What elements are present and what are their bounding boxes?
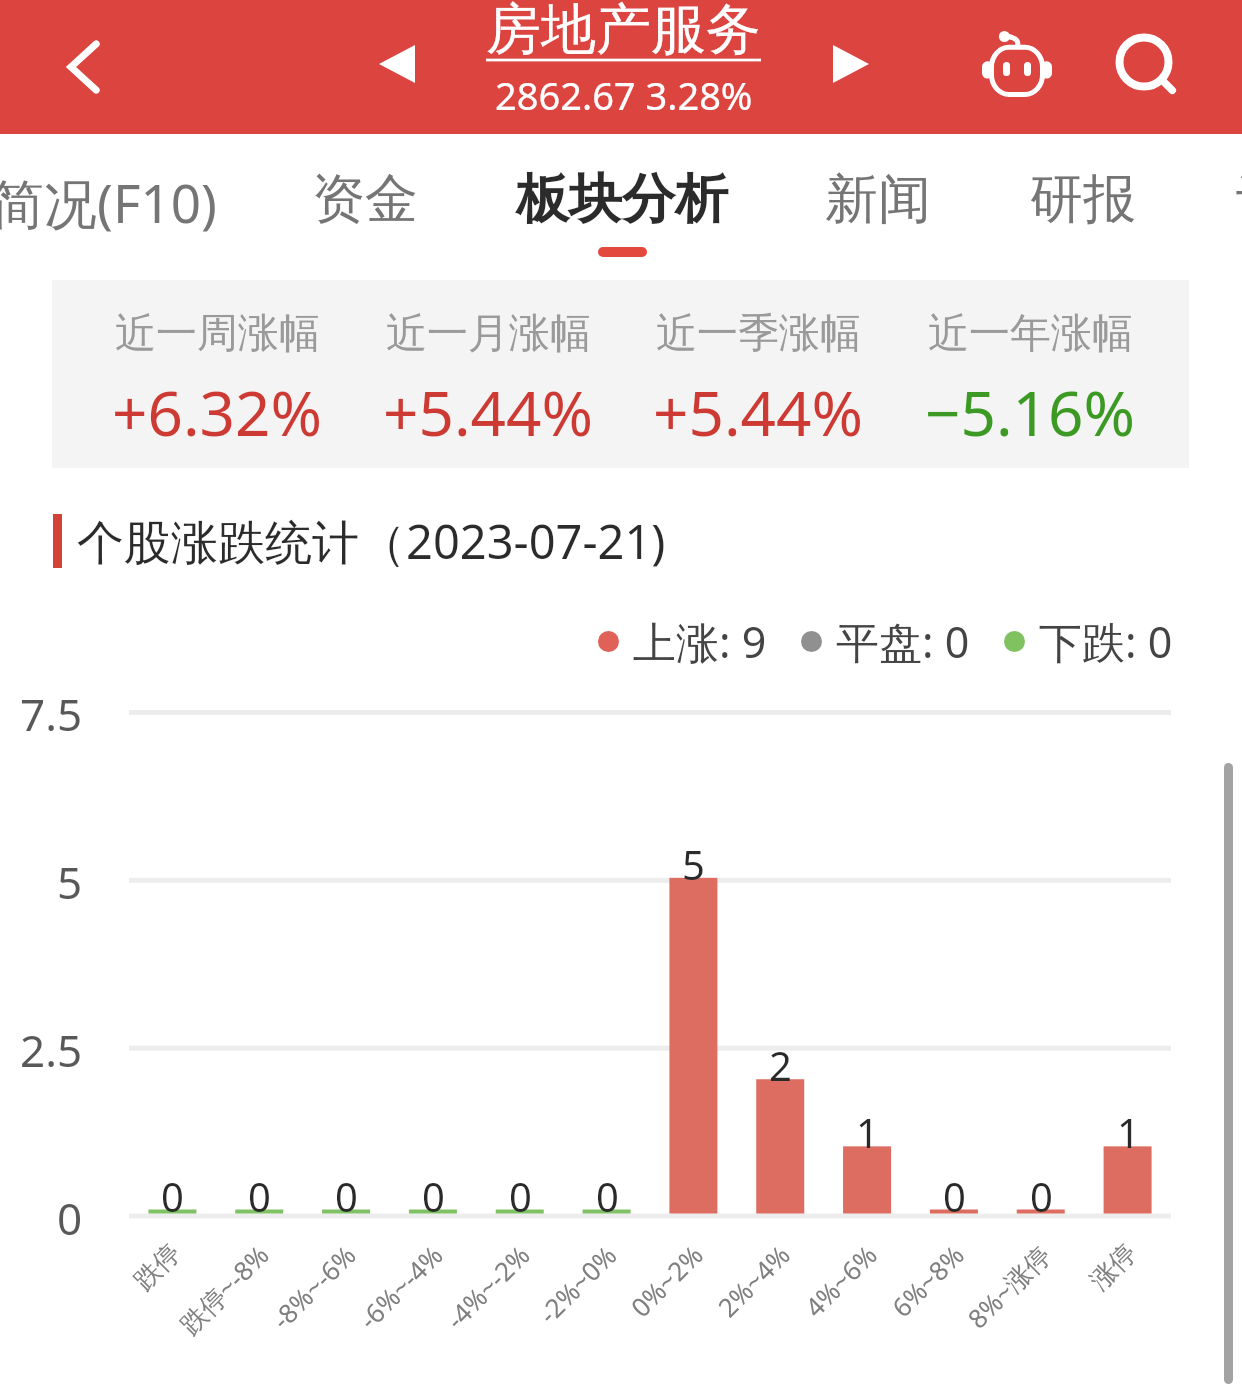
staticText: 0	[422, 1169, 445, 1223]
staticText: 2	[769, 1038, 792, 1092]
staticText: 0	[161, 1169, 184, 1223]
staticText: 简况(F10)	[0, 166, 217, 238]
staticText: 2.5	[20, 1020, 83, 1080]
staticText: 4%~6%	[797, 1237, 884, 1324]
staticText: -6%~-4%	[351, 1237, 450, 1336]
button[interactable]: AI assistant	[962, 0, 1072, 134]
staticText: 7.5	[20, 684, 83, 744]
staticText: 0	[57, 1188, 83, 1248]
staticText: 近一月涨幅	[386, 308, 591, 360]
staticText: 0	[1030, 1169, 1053, 1223]
staticText: -8%~-6%	[264, 1237, 363, 1336]
staticText: 跌停	[127, 1237, 187, 1297]
button[interactable]: 板块分析	[516, 134, 728, 274]
staticText: 板块分析	[516, 166, 728, 233]
staticText: 0	[943, 1169, 966, 1223]
button[interactable]: 资金	[312, 134, 418, 274]
staticText: 房地产服务	[486, 0, 761, 64]
staticText: 讨论	[1236, 166, 1242, 233]
staticText: 6%~8%	[884, 1237, 971, 1324]
staticText: 5	[57, 852, 83, 912]
staticText: 0%~2%	[623, 1237, 710, 1324]
button[interactable]: 近一年涨幅	[880, 280, 1180, 468]
button[interactable]: Next sector	[805, 0, 901, 134]
staticText: 个股涨跌统计（2023-07-21)	[77, 509, 666, 573]
staticText: 0	[596, 1169, 619, 1223]
staticText: 0	[509, 1169, 532, 1223]
button[interactable]: Previous sector	[349, 0, 445, 134]
button[interactable]: 近一月涨幅	[338, 280, 638, 468]
button[interactable]: 房地产服务	[486, 0, 761, 121]
button[interactable]: 讨论	[1236, 134, 1242, 274]
staticText: 近一年涨幅	[928, 308, 1133, 360]
staticText: 2862.67 3.28%	[495, 69, 753, 121]
staticText: 0	[335, 1169, 358, 1223]
staticText: 下跌: 0	[1039, 612, 1173, 671]
staticText: 近一周涨幅	[115, 308, 320, 360]
staticText: 1	[856, 1105, 879, 1159]
staticText: 1	[1117, 1105, 1140, 1159]
button[interactable]: 下跌: 0	[1004, 612, 1173, 671]
staticText: 2%~4%	[710, 1237, 797, 1324]
staticText: 涨停	[1083, 1237, 1143, 1297]
staticText: +6.32%	[112, 370, 322, 454]
staticText: 8%~涨停	[959, 1237, 1058, 1336]
button[interactable]: 上涨: 9	[598, 612, 767, 671]
staticText: 5	[682, 837, 705, 891]
button[interactable]: Back	[30, 0, 140, 134]
staticText: -4%~-2%	[438, 1237, 537, 1336]
button[interactable]: 近一季涨幅	[608, 280, 908, 468]
button[interactable]: 研报	[1030, 134, 1136, 274]
button[interactable]: 平盘: 0	[801, 612, 970, 671]
staticText: -2%~0%	[530, 1237, 624, 1330]
button[interactable]: 近一周涨幅	[67, 280, 367, 468]
staticText: 近一季涨幅	[656, 308, 861, 360]
staticText: 0	[248, 1169, 271, 1223]
button[interactable]: 简况(F10)	[0, 134, 217, 274]
staticText: 新闻	[825, 166, 931, 233]
staticText: 平盘: 0	[836, 612, 970, 671]
staticText: +5.44%	[383, 370, 593, 454]
staticText: 资金	[312, 166, 418, 233]
staticText: 研报	[1030, 166, 1136, 233]
staticText: +5.44%	[653, 370, 863, 454]
staticText: 跌停~-8%	[172, 1237, 276, 1342]
staticText: 上涨: 9	[633, 612, 767, 671]
staticText: −5.16%	[925, 370, 1135, 454]
button[interactable]: Search	[1090, 0, 1200, 134]
button[interactable]: 新闻	[825, 134, 931, 274]
